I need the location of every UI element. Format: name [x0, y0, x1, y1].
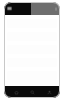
other: Menu: [7, 6, 12, 11]
button[interactable]: Home: [11, 87, 21, 97]
button[interactable]: Profile: [44, 87, 54, 97]
button[interactable]: Search: [27, 87, 37, 97]
button[interactable]: More options: [31, 2, 60, 15]
button[interactable]: Menu: [4, 2, 31, 15]
other: More options: [54, 7, 58, 11]
